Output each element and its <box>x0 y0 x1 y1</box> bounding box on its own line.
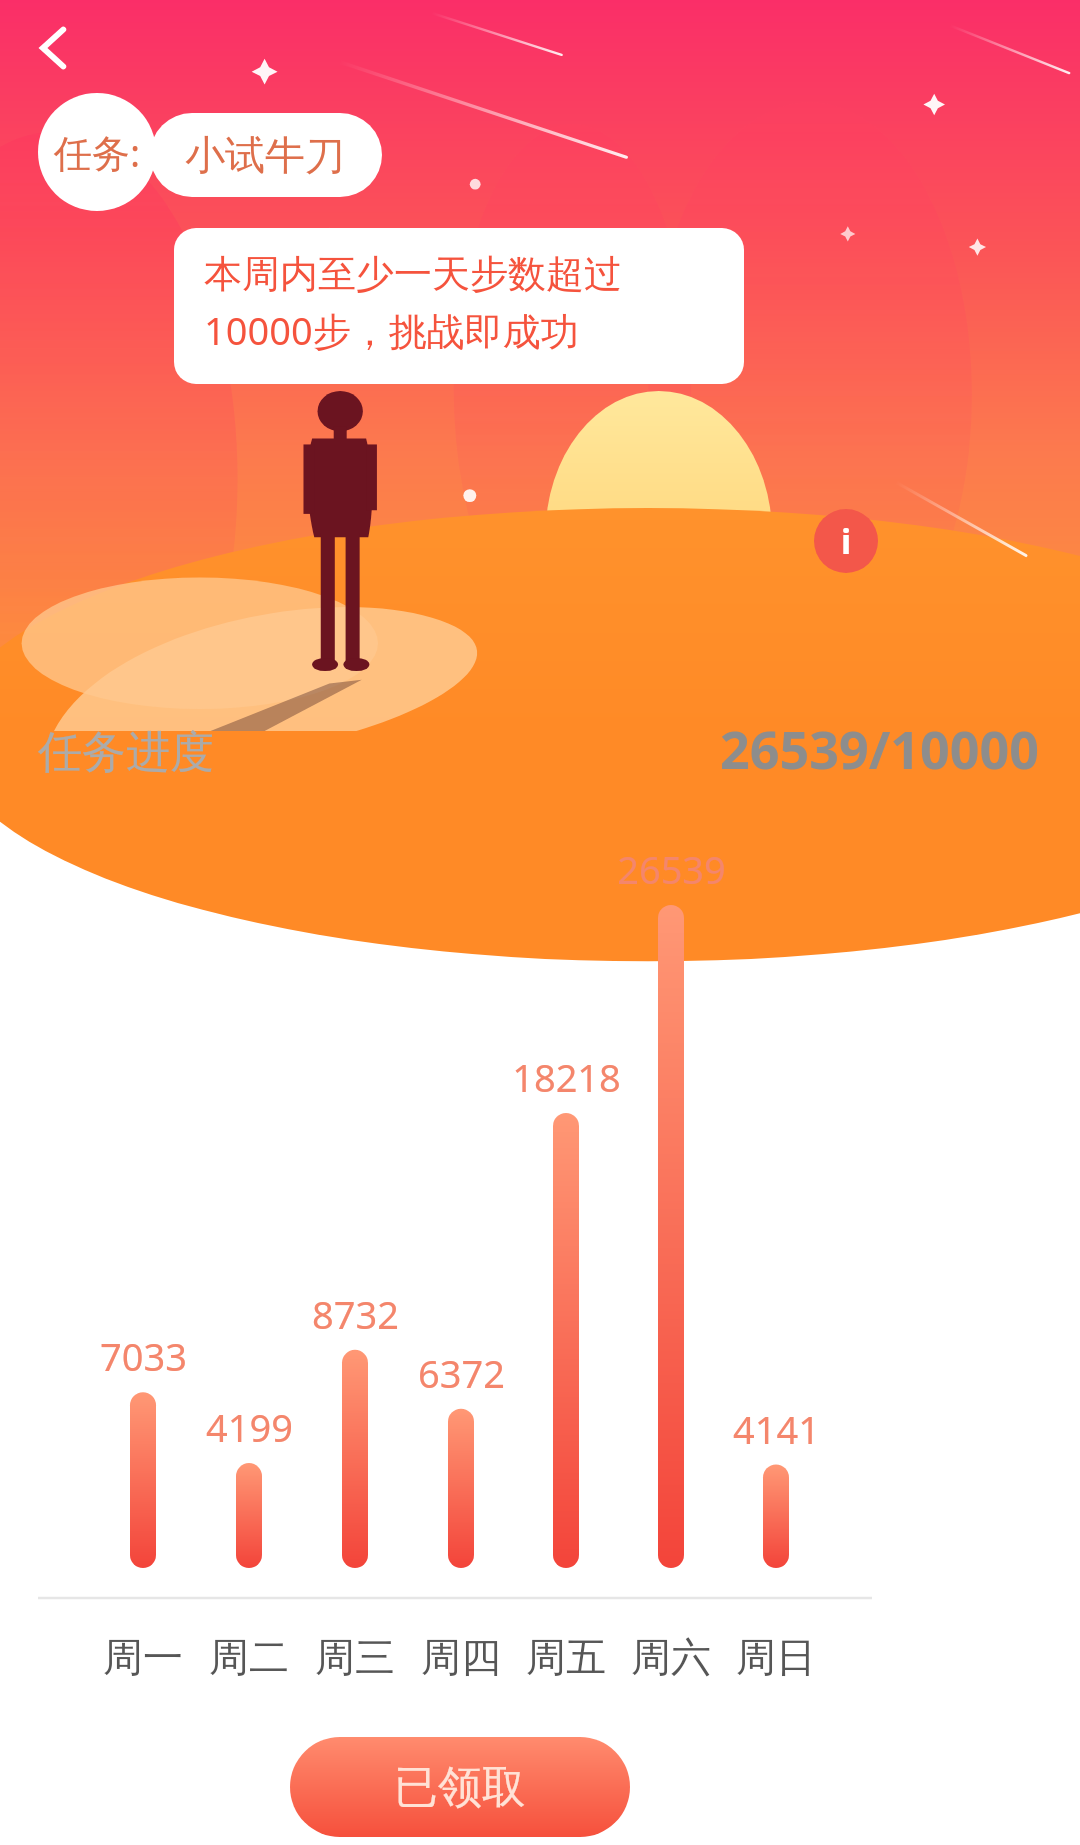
staticText: i <box>841 518 852 564</box>
button[interactable]: Info <box>814 509 878 573</box>
staticText: 小试牛刀 <box>185 130 345 180</box>
staticText: 4141 <box>733 1403 820 1455</box>
staticText: 任务进度 <box>38 725 214 780</box>
staticText: 本周内至少一天步数超过10000步，挑战即成功 <box>204 250 714 356</box>
staticText: 周五 <box>526 1632 606 1682</box>
staticText: 8732 <box>312 1288 399 1340</box>
staticText: 6372 <box>418 1347 505 1399</box>
staticText: 已领取 <box>394 1760 526 1815</box>
staticText: 周四 <box>421 1632 501 1682</box>
staticText: 任务: <box>54 126 141 178</box>
staticText: 7033 <box>100 1330 187 1382</box>
staticText: 周六 <box>631 1632 711 1682</box>
button[interactable]: 已领取 <box>290 1737 630 1837</box>
staticText: 周三 <box>315 1632 395 1682</box>
button[interactable]: 小试牛刀 <box>160 113 370 197</box>
staticText: 26539/10000 <box>720 713 1040 784</box>
staticText: 26539 <box>617 843 726 895</box>
button[interactable]: 任务: <box>38 93 156 211</box>
staticText: 18218 <box>512 1051 621 1103</box>
button[interactable]: Back <box>8 2 100 94</box>
staticText: 4199 <box>206 1401 293 1453</box>
staticText: 周二 <box>209 1632 289 1682</box>
staticText: 周日 <box>736 1632 816 1682</box>
staticText: 周一 <box>103 1632 183 1682</box>
